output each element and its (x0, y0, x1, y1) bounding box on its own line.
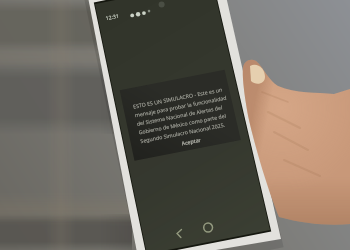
button[interactable]: Phone showing emergency alert (0, 0, 350, 250)
